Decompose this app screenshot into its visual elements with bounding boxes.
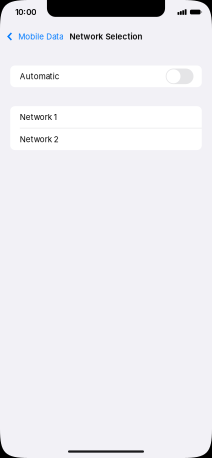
button[interactable]: Mobile Data [0, 29, 67, 44]
staticText: Network 2 [20, 134, 59, 144]
staticText: 10:00 [15, 7, 36, 17]
staticText: Mobile Data [18, 32, 63, 41]
staticText: Network 1 [20, 112, 57, 122]
staticText: Automatic [20, 71, 60, 81]
button[interactable]: Network 1 [10, 106, 202, 128]
button[interactable]: Automatic [10, 65, 202, 87]
staticText: Network Selection [69, 32, 142, 41]
button[interactable]: Network 2 [10, 128, 202, 150]
